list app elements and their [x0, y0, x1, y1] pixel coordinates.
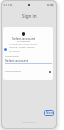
staticText: and settings — [9, 50, 20, 53]
staticText: Select account — [5, 58, 28, 63]
staticText: Show password — [5, 70, 22, 73]
staticText: Select account — [12, 36, 35, 41]
staticText: Your info, activity, security — [9, 46, 35, 49]
staticText: to continue — [17, 39, 30, 42]
button[interactable]: Show password — [4, 69, 52, 74]
staticText: Next — [46, 111, 53, 115]
staticText: Account name — [5, 55, 19, 58]
staticText: Sign in — [22, 13, 37, 19]
staticText: to continue to your account — [9, 43, 38, 46]
button[interactable]: Next — [44, 110, 54, 116]
button[interactable]: Your info, activity, security — [4, 46, 49, 53]
